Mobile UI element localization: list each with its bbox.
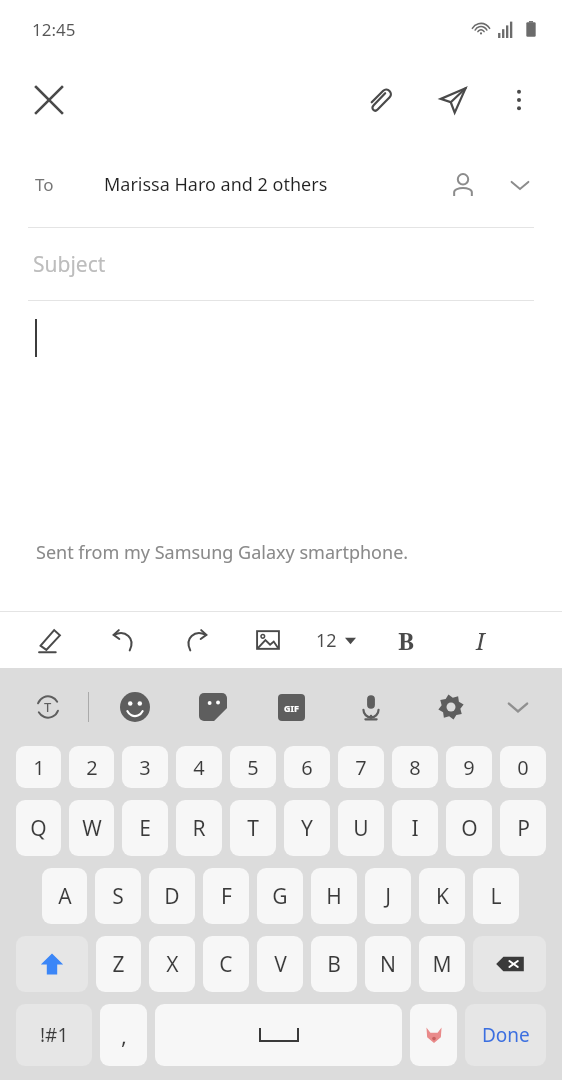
button[interactable]: Contacts — [438, 160, 488, 210]
button[interactable]: C — [203, 936, 249, 992]
button[interactable]: G — [257, 868, 303, 924]
button[interactable]: I — [392, 800, 438, 856]
button[interactable]: Sent from my Samsung Galaxy smartphone. — [0, 301, 562, 611]
button[interactable]: J — [365, 868, 411, 924]
button[interactable]: O — [446, 800, 492, 856]
staticText: O — [461, 814, 478, 843]
button[interactable]: Space — [155, 1004, 402, 1066]
button[interactable]: 8 — [392, 746, 438, 788]
button[interactable]: Done — [465, 1004, 546, 1066]
staticText: N — [380, 950, 396, 979]
button[interactable]: K — [419, 868, 465, 924]
staticText: Q — [30, 814, 47, 843]
button[interactable]: N — [365, 936, 411, 992]
button[interactable]: U — [338, 800, 384, 856]
button[interactable]: 4 — [176, 746, 222, 788]
button[interactable]: P — [500, 800, 546, 856]
staticText: 5 — [247, 754, 259, 781]
button[interactable]: I — [456, 616, 504, 664]
staticText: D — [164, 882, 180, 911]
button[interactable]: GIF — [267, 683, 315, 731]
staticText: B — [398, 624, 415, 657]
button[interactable]: B — [382, 616, 430, 664]
button[interactable]: 12 — [312, 616, 360, 664]
button[interactable]: Backspace — [473, 936, 546, 992]
button[interactable]: Hide keyboard — [494, 683, 542, 731]
button[interactable]: 9 — [446, 746, 492, 788]
button[interactable]: E — [122, 800, 168, 856]
button[interactable]: S — [95, 868, 141, 924]
staticText: U — [353, 814, 369, 843]
button[interactable]: 0 — [500, 746, 546, 788]
staticText: J — [385, 882, 391, 911]
button[interactable]: M — [419, 936, 465, 992]
staticText: T — [247, 814, 259, 843]
button[interactable]: , — [100, 1004, 147, 1066]
button[interactable]: Y — [284, 800, 330, 856]
button[interactable]: T — [230, 800, 276, 856]
button[interactable]: A — [42, 868, 87, 924]
button[interactable]: D — [149, 868, 195, 924]
button[interactable]: H — [311, 868, 357, 924]
staticText: 12:45 — [32, 18, 76, 41]
button[interactable]: L — [473, 868, 519, 924]
button[interactable]: X — [149, 936, 195, 992]
button[interactable]: W — [69, 800, 114, 856]
staticText: L — [490, 882, 502, 911]
staticText: Z — [112, 950, 125, 979]
button[interactable]: Insert image — [244, 616, 292, 664]
button[interactable]: Voice input — [347, 683, 395, 731]
button[interactable]: More options — [494, 75, 544, 125]
staticText: G — [272, 882, 288, 911]
button[interactable]: Emoji — [111, 683, 159, 731]
button[interactable]: To — [0, 142, 562, 227]
staticText: R — [192, 814, 206, 843]
staticText: 6 — [301, 754, 313, 781]
button[interactable]: Keyboard settings — [427, 683, 475, 731]
staticText: E — [139, 814, 151, 843]
button[interactable]: Text style — [26, 616, 74, 664]
staticText: F — [221, 882, 232, 911]
button[interactable]: Send — [426, 73, 480, 127]
staticText: Subject — [33, 250, 106, 279]
button[interactable]: B — [311, 936, 357, 992]
staticText: K — [436, 882, 449, 911]
button[interactable]: 3 — [122, 746, 168, 788]
button[interactable]: Stickers — [189, 683, 237, 731]
staticText: 4 — [193, 754, 205, 781]
staticText: C — [219, 950, 233, 979]
button[interactable]: F — [203, 868, 249, 924]
button[interactable]: !#1 — [16, 1004, 92, 1066]
button[interactable]: 2 — [69, 746, 114, 788]
button[interactable]: 6 — [284, 746, 330, 788]
staticText: GIF — [284, 702, 299, 714]
button[interactable]: Translate — [24, 683, 72, 731]
button[interactable]: Z — [96, 936, 141, 992]
staticText: !#1 — [40, 1022, 69, 1048]
button[interactable]: V — [257, 936, 303, 992]
staticText: S — [112, 882, 124, 911]
button[interactable]: Shift — [16, 936, 88, 992]
staticText: M — [432, 950, 452, 979]
button[interactable]: Attach — [352, 73, 406, 127]
staticText: Sent from my Samsung Galaxy smartphone. — [36, 540, 409, 565]
staticText: T — [44, 698, 52, 716]
button[interactable]: R — [176, 800, 222, 856]
staticText: H — [326, 882, 342, 911]
button[interactable]: Undo — [100, 616, 148, 664]
button[interactable]: Emoji key — [410, 1004, 457, 1066]
staticText: 8 — [409, 754, 421, 781]
staticText: 0 — [517, 754, 529, 781]
button[interactable]: 7 — [338, 746, 384, 788]
staticText: Y — [301, 814, 313, 843]
button[interactable]: Close — [22, 73, 76, 127]
button[interactable]: Expand recipients — [496, 161, 544, 209]
staticText: 12 — [316, 628, 337, 653]
button[interactable]: 5 — [230, 746, 276, 788]
button[interactable]: Redo — [172, 616, 220, 664]
staticText: A — [58, 882, 72, 911]
button[interactable]: Q — [16, 800, 61, 856]
button[interactable]: 1 — [16, 746, 61, 788]
staticText: I — [411, 814, 419, 843]
button[interactable]: Subject — [0, 228, 562, 300]
